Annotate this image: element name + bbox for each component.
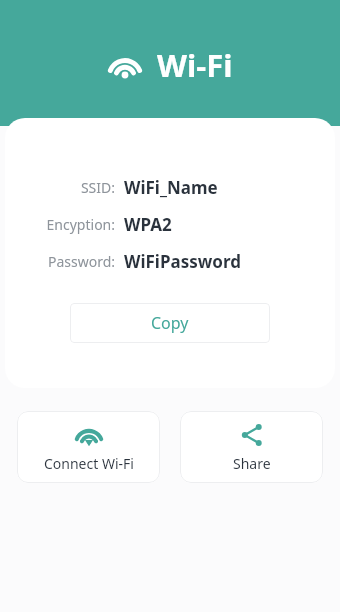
button[interactable]: Share [180,411,323,483]
button[interactable]: Copy [70,303,270,343]
button[interactable]: Connect Wi-Fi [17,411,160,483]
staticText: Connect Wi-Fi [44,454,134,473]
staticText: Encyption: [46,215,115,234]
staticText: SSID: [80,178,115,197]
staticText: Password: [47,252,115,271]
staticText: WiFi_Name [124,176,218,199]
staticText: WiFiPassword [124,250,241,273]
staticText: Wi-Fi [157,44,233,86]
other: Share [240,423,264,447]
staticText: WPA2 [124,213,172,236]
staticText: Share [233,454,271,473]
staticText: Copy [151,312,189,334]
other: Connect Wi-Fi [74,423,104,447]
